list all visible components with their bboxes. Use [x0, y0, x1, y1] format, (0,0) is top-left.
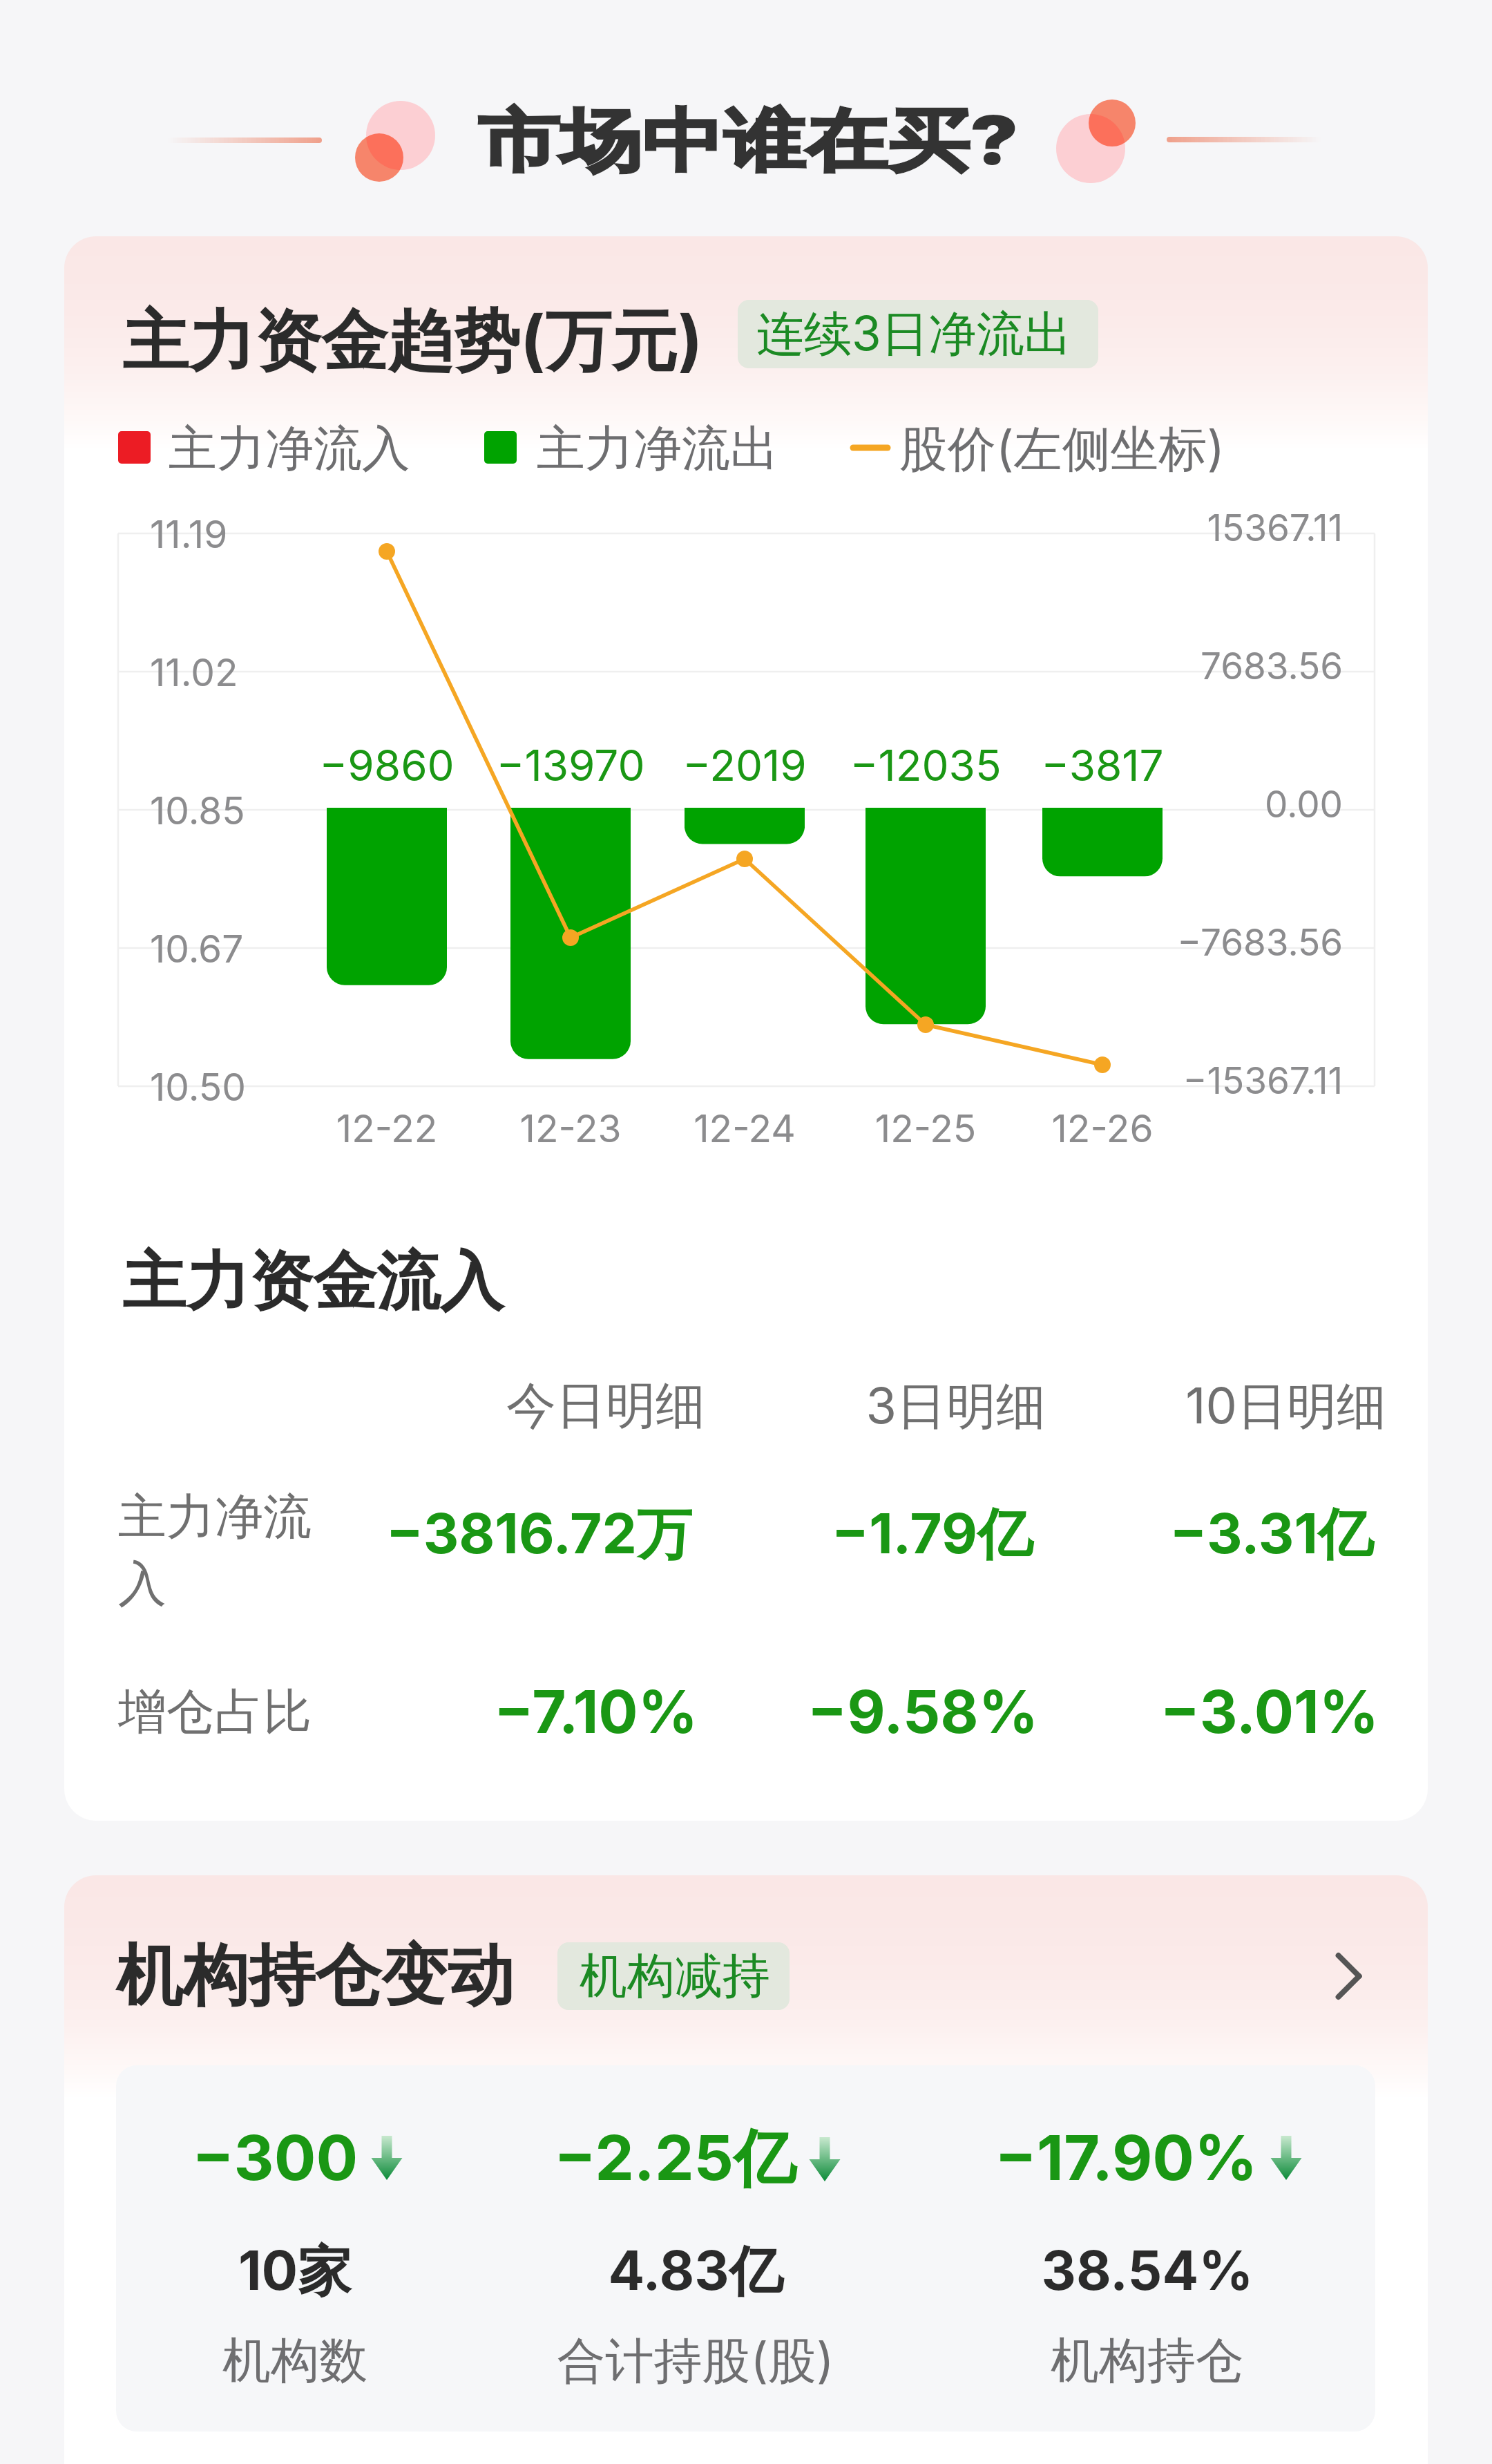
staticText: 机构持仓变动 [116, 1935, 514, 2018]
staticText: 38.54% [871, 2237, 1424, 2302]
staticText: 0.00 [997, 782, 1343, 826]
staticText: 股价(左侧坐标) [899, 419, 1225, 480]
staticText: 10.85 [150, 788, 245, 834]
staticText: 今日明细 [365, 1375, 705, 1438]
staticText: 主力净流入 [169, 419, 410, 480]
staticText: 主力净流入 [118, 1487, 318, 1615]
staticText: −3.01% [1038, 1676, 1379, 1747]
staticText: −7.10% [357, 1676, 698, 1747]
staticText: 11.02 [150, 650, 238, 696]
staticText: 7683.56 [997, 644, 1343, 688]
button[interactable]: 机构持仓变动 [116, 1931, 1375, 2021]
staticText: 机构数 [64, 2331, 571, 2391]
staticText: 主力净流出 [537, 419, 778, 480]
staticText: 12-25 [805, 1106, 1046, 1152]
staticText: 10日明细 [1046, 1375, 1386, 1438]
staticText: 主力资金流入 [122, 1242, 504, 1322]
staticText: −300 [192, 2120, 358, 2195]
staticText: 12-23 [450, 1106, 691, 1152]
staticText: −2019 [624, 739, 865, 791]
staticText: −9860 [266, 739, 508, 791]
staticText: 12-22 [266, 1106, 508, 1152]
staticText: −17.90% [995, 2120, 1258, 2195]
staticText: 增仓占比 [118, 1682, 312, 1743]
staticText: −15367.11 [997, 1059, 1343, 1103]
staticText: 机构持仓 [871, 2331, 1424, 2391]
staticText: 10家 [64, 2237, 571, 2306]
staticText: 连续3日净流出 [756, 304, 1072, 364]
staticText: 3日明细 [705, 1375, 1046, 1438]
staticText: 12-26 [982, 1106, 1223, 1152]
staticText: 11.19 [150, 511, 228, 558]
staticText: 10.50 [150, 1064, 246, 1110]
staticText: −12035 [805, 739, 1046, 791]
staticText: −1.79亿 [692, 1499, 1033, 1569]
staticText: 合计持股(股) [419, 2331, 972, 2392]
staticText: 10.67 [150, 926, 244, 972]
staticText: 市场中谁在买? [478, 99, 1019, 184]
staticText: −3817 [982, 739, 1223, 791]
staticText: 机构减持 [580, 1946, 770, 2007]
staticText: −7683.56 [997, 920, 1343, 965]
staticText: −2.25亿 [554, 2120, 796, 2199]
staticText: −3816.72万 [352, 1499, 692, 1569]
staticText: −9.58% [698, 1676, 1038, 1747]
staticText: 15367.11 [997, 506, 1343, 550]
staticText: −13970 [450, 739, 691, 791]
staticText: 4.83亿 [419, 2237, 972, 2306]
staticText: −3.31亿 [1033, 1499, 1373, 1569]
other: 查看机构持仓变动详情 [1326, 1951, 1375, 2001]
staticText: 12-24 [624, 1106, 865, 1152]
staticText: 主力资金趋势(万元) [122, 300, 703, 384]
